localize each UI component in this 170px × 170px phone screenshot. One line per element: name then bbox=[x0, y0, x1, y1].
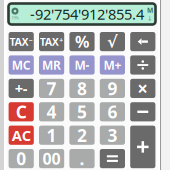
staticText: TAX bbox=[40, 34, 59, 49]
button[interactable]: Multiply bbox=[130, 79, 155, 98]
staticText: AC bbox=[12, 125, 31, 145]
button[interactable]: √ bbox=[100, 32, 125, 51]
staticText: M+ bbox=[103, 57, 121, 73]
staticText: MC bbox=[12, 57, 31, 73]
staticText: 8 bbox=[77, 77, 87, 100]
staticText: 9 bbox=[107, 77, 117, 100]
staticText: 6 bbox=[107, 100, 117, 123]
button[interactable]: Settings bbox=[8, 4, 21, 23]
staticText: 0 bbox=[16, 147, 26, 170]
button[interactable]: 1 bbox=[39, 126, 64, 145]
button[interactable]: M+ bbox=[100, 55, 125, 75]
staticText: % bbox=[75, 31, 89, 52]
button[interactable]: 7 bbox=[39, 79, 64, 98]
staticText: 19% bbox=[11, 15, 18, 20]
staticText: 4 bbox=[47, 100, 57, 123]
button[interactable]: 4 bbox=[39, 102, 64, 121]
staticText: 2 bbox=[77, 124, 87, 147]
staticText: × bbox=[137, 76, 148, 101]
staticText: C bbox=[16, 100, 27, 123]
staticText: ↓ bbox=[147, 15, 153, 22]
button[interactable]: Minus bbox=[130, 102, 155, 121]
staticText: 1 bbox=[47, 124, 57, 147]
staticText: 00 bbox=[43, 148, 61, 169]
button[interactable]: 6 bbox=[100, 102, 125, 121]
button[interactable]: 0 bbox=[9, 149, 34, 168]
staticText: MR bbox=[42, 57, 61, 73]
button[interactable]: 8 bbox=[69, 79, 95, 98]
button[interactable]: % bbox=[69, 32, 95, 51]
staticText: + bbox=[59, 36, 63, 45]
button[interactable]: . bbox=[69, 149, 95, 168]
button[interactable]: MC bbox=[9, 55, 34, 75]
button[interactable]: Tax plus bbox=[39, 32, 64, 51]
button[interactable]: AC bbox=[9, 126, 34, 145]
button[interactable]: Plus bbox=[130, 126, 155, 168]
button[interactable]: M- bbox=[69, 55, 95, 75]
button[interactable]: Divide bbox=[130, 55, 155, 75]
button[interactable]: 5 bbox=[69, 102, 95, 121]
button[interactable]: C bbox=[9, 102, 34, 121]
button[interactable]: +- bbox=[9, 79, 34, 98]
staticText: √ bbox=[107, 32, 118, 51]
staticText: 5 bbox=[77, 100, 87, 123]
staticText: M bbox=[147, 6, 153, 15]
staticText: +- bbox=[15, 79, 28, 98]
staticText: − bbox=[29, 36, 33, 45]
button[interactable]: Backspace bbox=[130, 32, 155, 51]
button[interactable]: 00 bbox=[39, 149, 64, 168]
button[interactable]: 9 bbox=[100, 79, 125, 98]
staticText: M- bbox=[74, 57, 89, 73]
button[interactable]: 3 bbox=[100, 126, 125, 145]
button[interactable]: Equals bbox=[100, 149, 125, 168]
staticText: 3 bbox=[107, 124, 117, 147]
staticText: . bbox=[79, 147, 84, 170]
staticText: -92'754'912'855.4 bbox=[30, 4, 144, 24]
staticText: TAX bbox=[9, 34, 28, 49]
button[interactable]: 2 bbox=[69, 126, 95, 145]
button[interactable]: MR bbox=[39, 55, 64, 75]
staticText: 7 bbox=[47, 77, 57, 100]
button[interactable]: Tax minus bbox=[9, 32, 34, 51]
